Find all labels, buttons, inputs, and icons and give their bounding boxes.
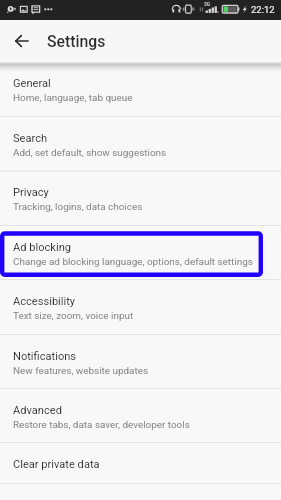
button[interactable]: Clear private data	[0, 443, 281, 484]
staticText: New features, website updates	[13, 365, 149, 377]
button[interactable]: Notifications	[0, 335, 281, 389]
staticText: Notifications	[13, 350, 77, 363]
button[interactable]: Accessibility	[0, 280, 281, 335]
staticText: Accessibility	[13, 295, 76, 308]
staticText: Clear private data	[13, 458, 100, 471]
staticText: Settings	[47, 32, 106, 51]
staticText: Text size, zoom, voice input	[13, 310, 134, 322]
button[interactable]: Ad blocking	[0, 226, 281, 280]
staticText: General	[13, 77, 51, 90]
staticText: Restore tabs, data saver, developer tool…	[13, 419, 190, 431]
staticText: Search	[13, 132, 48, 145]
staticText: Add, set default, show suggestions	[13, 147, 167, 159]
staticText: Tracking, logins, data choices	[13, 201, 143, 213]
button[interactable]: Search	[0, 117, 281, 172]
staticText: 3G	[204, 1, 211, 7]
staticText: Home, language, tab queue	[13, 92, 133, 104]
button[interactable]: Advanced	[0, 389, 281, 443]
staticText: Change ad blocking language, options, de…	[13, 256, 253, 268]
staticText: Advanced	[13, 404, 62, 417]
staticText: 22:12	[251, 4, 275, 15]
staticText: Privacy	[13, 186, 49, 199]
button[interactable]: Privacy	[0, 171, 281, 226]
button[interactable]: General	[0, 62, 281, 117]
staticText: Ad blocking	[13, 241, 71, 254]
button[interactable]: Back	[8, 20, 34, 62]
